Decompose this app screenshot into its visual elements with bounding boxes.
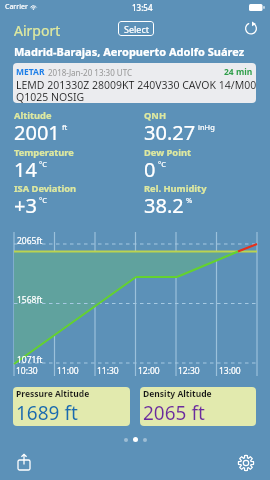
staticText: 12:30 (178, 365, 200, 377)
staticText: 1071ft (17, 354, 43, 366)
button[interactable]: METAR (13, 63, 256, 103)
staticText: Carrier (5, 2, 28, 12)
staticText: ISA Deviation (14, 182, 77, 195)
staticText: LEMD 201330Z 28009KT 240V330 CAVOK 14/M0… (16, 78, 256, 103)
staticText: 14 (14, 156, 37, 183)
staticText: 2018-Jan-20 13:30 UTC (48, 67, 133, 78)
button[interactable]: Density Altitude (140, 387, 256, 426)
staticText: % (186, 195, 193, 205)
staticText: 2065ft (17, 235, 43, 247)
staticText: °C (39, 159, 47, 169)
button[interactable]: Refresh (240, 17, 262, 39)
staticText: 13:00 (219, 365, 241, 377)
staticText: Airport (14, 21, 61, 40)
staticText: Rel. Humidity (144, 182, 207, 195)
staticText: 1568ft (17, 294, 43, 306)
staticText: Altitude (14, 109, 52, 122)
staticText: 38.2 (144, 192, 184, 219)
staticText: QNH (144, 109, 167, 122)
staticText: 13:54 (132, 2, 153, 13)
staticText: 1689 ft (16, 400, 78, 426)
staticText: inHg (198, 122, 215, 132)
staticText: +3 (14, 192, 37, 219)
staticText: Select (124, 23, 149, 35)
staticText: Madrid-Barajas, Aeropuerto Adolfo Suárez (14, 44, 245, 59)
staticText: 11:30 (97, 365, 119, 377)
staticText: 11:00 (57, 365, 79, 377)
staticText: Dew Point (144, 146, 191, 159)
staticText: Temperature (14, 146, 74, 159)
staticText: Density Altitude (143, 388, 212, 400)
button[interactable]: Settings (234, 451, 258, 475)
staticText: 30.27 (144, 119, 196, 146)
staticText: 2065 ft (143, 400, 205, 426)
staticText: 12:00 (138, 365, 160, 377)
staticText: ft (62, 122, 68, 132)
button[interactable]: Select (118, 21, 154, 36)
staticText: METAR (16, 66, 45, 78)
button[interactable]: Share (12, 450, 36, 474)
staticText: °C (39, 195, 47, 205)
staticText: °C (158, 159, 166, 169)
staticText: 10:30 (16, 365, 38, 377)
staticText: 2001 (14, 119, 60, 146)
staticText: Pressure Altitude (16, 388, 90, 400)
staticText: 0 (144, 156, 156, 183)
staticText: 24 min (224, 66, 253, 78)
button[interactable]: Pressure Altitude (13, 387, 130, 426)
